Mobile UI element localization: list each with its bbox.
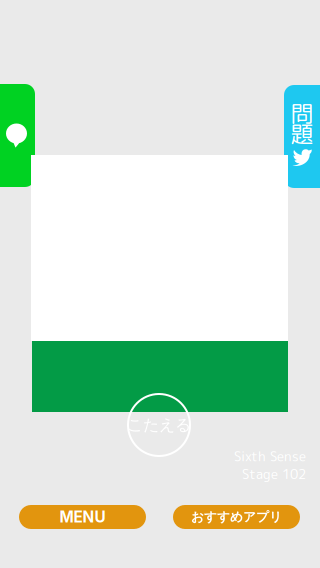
button[interactable]: 問題をツイート — [284, 85, 320, 188]
staticText: 題 — [290, 118, 313, 149]
staticText: Stage 102 — [242, 465, 306, 483]
staticText: こたえる — [127, 415, 191, 435]
button[interactable]: LINEで送る — [0, 84, 35, 187]
staticText: MENU — [59, 508, 105, 526]
button[interactable]: おすすめアプリ — [173, 505, 300, 529]
staticText: Sixth Sense — [234, 447, 306, 466]
button[interactable]: こたえる — [128, 394, 190, 456]
button[interactable]: MENU — [19, 505, 146, 529]
staticText: おすすめアプリ — [191, 509, 282, 525]
staticText: 問 — [290, 98, 313, 129]
